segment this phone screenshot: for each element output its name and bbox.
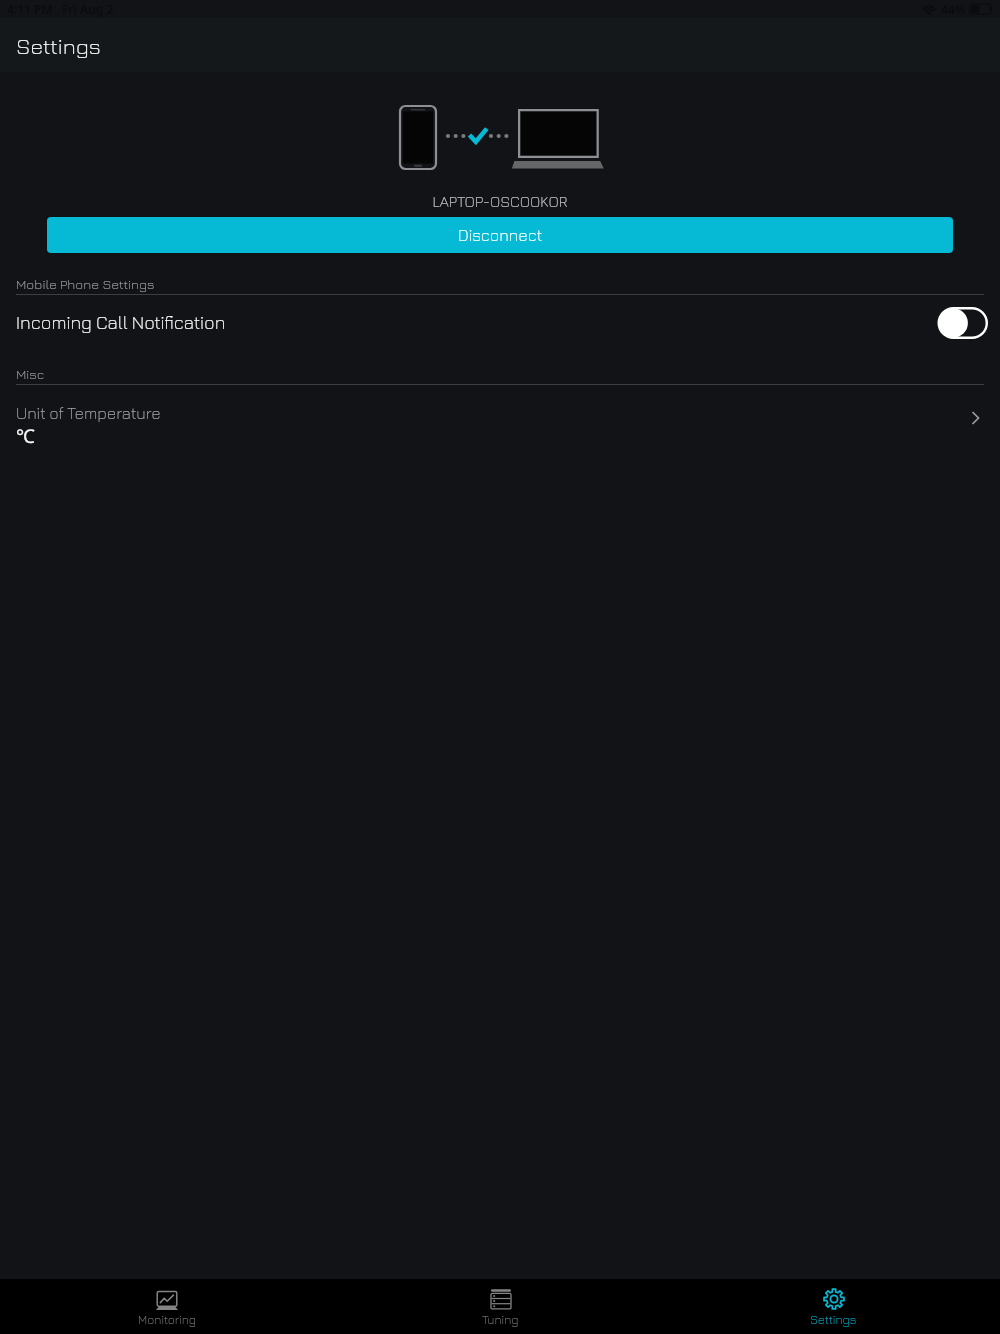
staticText: ℃: [16, 423, 35, 449]
button[interactable]: Monitoring: [0, 1279, 334, 1334]
button[interactable]: Unit of Temperature: [0, 385, 1000, 457]
staticText: Settings: [810, 1312, 857, 1326]
staticText: Unit of Temperature: [16, 404, 161, 423]
staticText: Incoming Call Notification: [16, 312, 226, 333]
other: Incoming Call Notification toggle: [933, 307, 988, 339]
staticText: Monitoring: [138, 1312, 196, 1326]
staticText: 44%: [941, 1, 966, 17]
staticText: Misc: [16, 366, 45, 382]
staticText: Mobile Phone Settings: [16, 276, 155, 292]
button[interactable]: Settings: [667, 1279, 1000, 1334]
staticText: LAPTOP-OSCOOKOR: [0, 193, 1000, 211]
button[interactable]: Disconnect: [47, 217, 953, 253]
staticText: Disconnect: [458, 226, 543, 245]
staticText: Tuning: [482, 1312, 519, 1326]
button[interactable]: Tuning: [334, 1279, 667, 1334]
button[interactable]: Incoming Call Notification: [0, 295, 1000, 368]
staticText: Settings: [16, 33, 101, 59]
